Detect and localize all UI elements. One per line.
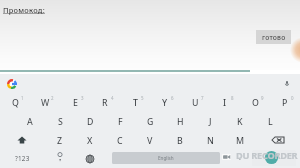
staticText: R [102,97,108,109]
staticText: M [236,135,245,147]
button[interactable]: готово [256,30,291,44]
staticText: Q [12,97,19,109]
button[interactable]: Z [45,131,75,150]
staticText: D [87,116,94,128]
staticText: V [147,135,153,147]
button[interactable]: U [180,93,210,112]
staticText: Промокод: [3,5,45,15]
staticText: 9 [261,95,264,101]
staticText: 1 [21,95,24,101]
button[interactable]: Voice input [282,78,292,88]
staticText: 6 [171,95,174,101]
button[interactable]: W [30,93,60,112]
button[interactable]: S [45,112,75,131]
staticText: U [192,97,199,109]
staticText: H [177,116,184,128]
staticText: 3 [81,95,84,101]
staticText: 2 [51,95,54,101]
staticText: X [87,135,93,147]
button[interactable]: Emoji [51,149,69,167]
staticText: A [27,116,33,128]
button[interactable]: L [255,112,285,131]
staticText: готово [262,33,286,42]
staticText: I [223,97,227,109]
button[interactable]: G [135,112,165,131]
button[interactable]: T [120,93,150,112]
staticText: P [282,97,288,109]
button[interactable]: Enter [252,150,296,166]
staticText: Y [162,97,168,109]
staticText: L [268,116,273,128]
staticText: 5 [141,95,144,101]
button[interactable]: Backspace [271,133,285,147]
button[interactable]: Shift [16,134,28,146]
button[interactable]: K [225,112,255,131]
button[interactable]: E [60,93,90,112]
staticText: 7 [201,95,204,101]
button[interactable]: Change language [83,152,97,166]
button[interactable]: D [75,112,105,131]
button[interactable]: H [165,112,195,131]
staticText: E [73,97,78,109]
button[interactable]: P [270,93,300,112]
staticText: O [252,97,259,109]
button[interactable]: F [105,112,135,131]
staticText: B [177,135,183,147]
staticText: J [209,116,212,128]
button[interactable]: Period [231,149,249,167]
button[interactable]: X [75,131,105,150]
button[interactable]: M [225,131,255,150]
staticText: DU RECORDER [236,149,298,162]
button[interactable]: ?123 [7,149,37,167]
button[interactable]: R [90,93,120,112]
staticText: N [207,135,214,147]
staticText: 4 [111,95,114,101]
button[interactable]: Промокод: [3,5,45,15]
staticText: C [117,135,123,147]
button[interactable]: I [210,93,240,112]
staticText: T [133,97,138,109]
button[interactable]: English [112,152,220,164]
button[interactable]: Y [150,93,180,112]
button[interactable]: J [195,112,225,131]
button[interactable]: O [240,93,270,112]
staticText: W [41,97,50,109]
staticText: F [118,116,123,128]
button[interactable]: A [15,112,45,131]
staticText: K [237,116,243,128]
staticText: Z [57,135,63,147]
button[interactable]: C [105,131,135,150]
staticText: S [58,116,63,128]
staticText: English [158,155,174,161]
staticText: G [147,116,154,128]
staticText: 0 [291,95,294,101]
button[interactable]: V [135,131,165,150]
staticText: ?123 [15,154,30,163]
button[interactable]: Q [0,93,30,112]
button[interactable]: Google [7,79,17,89]
button[interactable]: B [165,131,195,150]
button[interactable]: N [195,131,225,150]
staticText: . [239,153,241,163]
staticText: 8 [231,95,234,101]
